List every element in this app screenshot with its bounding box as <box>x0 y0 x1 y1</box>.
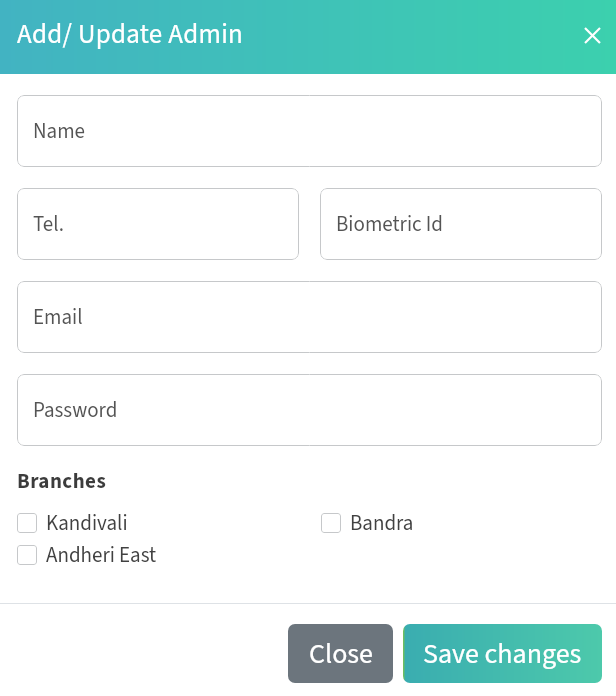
staticText: Bandra <box>350 508 414 538</box>
button[interactable]: Close <box>288 624 393 683</box>
button[interactable]: Kandivali <box>17 507 128 539</box>
button[interactable]: Tel. <box>17 188 299 260</box>
button[interactable]: Save changes <box>403 624 602 683</box>
staticText: Biometric Id <box>336 209 444 239</box>
staticText: Save changes <box>423 634 582 674</box>
staticText: Email <box>33 302 83 332</box>
staticText: Tel. <box>33 209 64 239</box>
button[interactable]: Name <box>17 95 602 167</box>
staticText: Andheri East <box>46 540 157 570</box>
staticText: Close <box>309 634 373 674</box>
staticText: Branches <box>17 466 107 496</box>
staticText: Password <box>33 395 118 425</box>
staticText: Kandivali <box>46 508 128 538</box>
staticText: Name <box>33 116 85 146</box>
button[interactable]: Andheri East <box>17 539 157 571</box>
button[interactable]: Email <box>17 281 602 353</box>
button[interactable]: Bandra <box>321 507 414 539</box>
button[interactable]: Close dialog <box>572 15 612 55</box>
button[interactable]: Password <box>17 374 602 446</box>
button[interactable]: Biometric Id <box>320 188 602 260</box>
staticText: Add/ Update Admin <box>17 15 244 53</box>
